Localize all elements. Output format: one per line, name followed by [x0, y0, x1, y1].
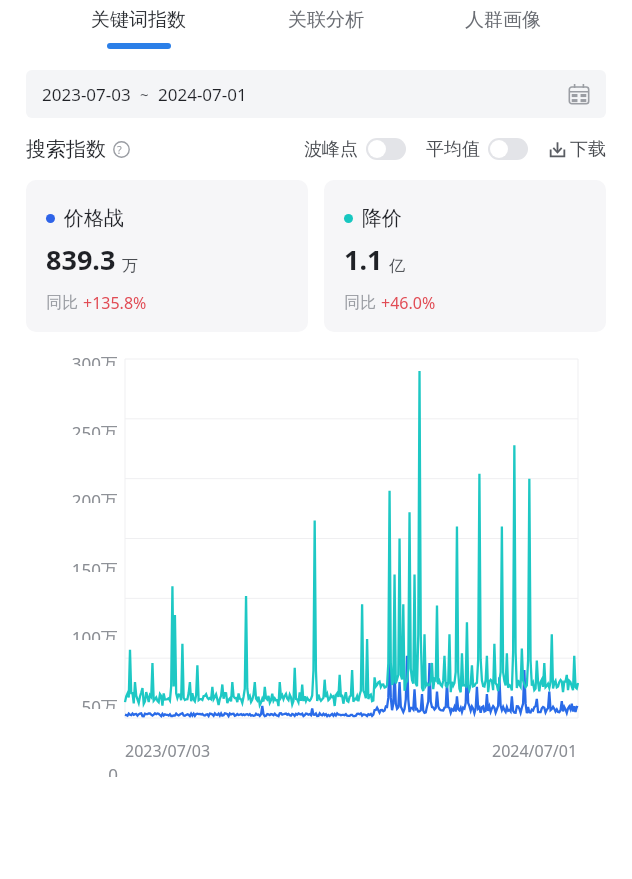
- staticText: 亿: [389, 256, 405, 276]
- staticText: 人群画像: [465, 8, 541, 32]
- button[interactable]: Toggle: [488, 138, 528, 160]
- staticText: 50万: [81, 695, 118, 709]
- staticText: +46.0%: [381, 292, 436, 314]
- staticText: 2023/07/03: [125, 740, 211, 762]
- staticText: 降价: [362, 206, 402, 231]
- staticText: 0: [108, 763, 118, 777]
- button[interactable]: 降价: [324, 180, 606, 332]
- button[interactable]: 人群画像: [455, 0, 551, 49]
- button[interactable]: 2023-07-03: [26, 70, 606, 118]
- staticText: 波峰点: [304, 138, 358, 161]
- staticText: 关联分析: [288, 8, 364, 32]
- staticText: 关键词指数: [91, 8, 186, 32]
- staticText: ~: [140, 84, 149, 104]
- staticText: 平均值: [426, 138, 480, 161]
- other: Download: [548, 140, 567, 159]
- staticText: 839.3: [46, 241, 116, 278]
- button[interactable]: Toggle: [366, 138, 406, 160]
- staticText: 1.1: [344, 241, 383, 278]
- staticText: +135.8%: [83, 292, 147, 314]
- staticText: 同比: [344, 293, 376, 313]
- staticText: 2023-07-03: [42, 83, 131, 106]
- button[interactable]: 关联分析: [278, 0, 374, 49]
- staticText: 同比: [46, 293, 78, 313]
- staticText: 价格战: [64, 206, 124, 231]
- staticText: 100万: [71, 626, 118, 640]
- other: Pick date range: [568, 83, 590, 105]
- staticText: 搜索指数: [26, 137, 106, 162]
- button[interactable]: Download: [548, 138, 606, 161]
- staticText: 万: [122, 256, 138, 276]
- button[interactable]: 价格战: [26, 180, 308, 332]
- staticText: 200万: [71, 489, 118, 503]
- button[interactable]: 关键词指数: [81, 0, 196, 49]
- staticText: 150万: [71, 558, 118, 572]
- staticText: 2024/07/01: [492, 740, 578, 762]
- staticText: 2024-07-01: [158, 83, 247, 106]
- button[interactable]: Help: [113, 141, 130, 158]
- staticText: 下载: [570, 138, 606, 161]
- staticText: 300万: [71, 352, 118, 366]
- staticText: ?: [117, 142, 122, 157]
- staticText: 250万: [71, 421, 118, 435]
